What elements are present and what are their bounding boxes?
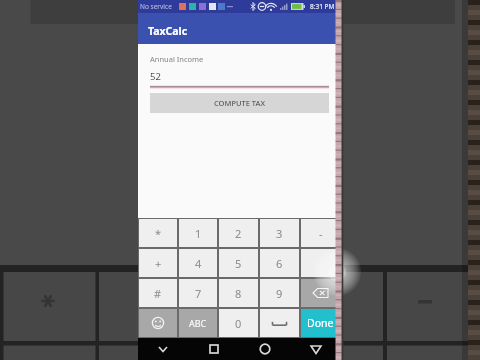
button[interactable]: ABC — [179, 309, 217, 337]
staticText: Done — [307, 316, 334, 330]
button[interactable]: * — [139, 219, 177, 247]
button[interactable]: 8 — [219, 279, 258, 307]
staticText: ABC — [189, 317, 207, 329]
staticText: 4 — [195, 256, 202, 271]
button[interactable]: Done — [301, 309, 340, 337]
staticText: 52 — [150, 70, 161, 83]
staticText: 2 — [235, 226, 242, 241]
staticText: - — [319, 226, 323, 241]
button[interactable]: 7 — [179, 279, 217, 307]
staticText: 7 — [195, 286, 202, 301]
staticText: TaxCalc — [148, 24, 188, 38]
staticText: 8 — [235, 286, 242, 301]
staticText: COMPUTE TAX — [214, 98, 266, 108]
button[interactable]: 5 — [219, 249, 258, 277]
button[interactable]: Emoji — [139, 309, 177, 337]
button[interactable]: COMPUTE TAX — [150, 93, 329, 113]
button[interactable]: 9 — [260, 279, 299, 307]
staticText: # — [154, 286, 162, 301]
staticText: 1 — [195, 226, 202, 241]
button[interactable]: Home — [239, 338, 290, 360]
staticText: + — [155, 256, 162, 271]
staticText: Annual Income — [150, 54, 204, 64]
staticText: 9 — [276, 286, 283, 301]
staticText: * — [155, 226, 162, 241]
button[interactable]: + — [139, 249, 177, 277]
staticText: 5 — [235, 256, 242, 271]
button[interactable]: - — [301, 219, 340, 247]
staticText: 3 — [276, 226, 283, 241]
button[interactable]: Space — [260, 309, 299, 337]
button[interactable]: 4 — [179, 249, 217, 277]
button[interactable] — [301, 249, 340, 277]
button[interactable]: 1 — [179, 219, 217, 247]
staticText: 8:31 PM — [310, 2, 335, 11]
staticText: No service — [140, 2, 172, 11]
button[interactable]: Recent apps — [188, 338, 239, 360]
button[interactable]: # — [139, 279, 177, 307]
button[interactable]: 2 — [219, 219, 258, 247]
staticText: 0 — [235, 316, 242, 331]
button[interactable]: 3 — [260, 219, 299, 247]
button[interactable]: 6 — [260, 249, 299, 277]
button[interactable]: Back — [290, 338, 341, 360]
staticText: 6 — [276, 256, 283, 271]
button[interactable]: 0 — [219, 309, 258, 337]
button[interactable]: Backspace — [301, 279, 340, 307]
button[interactable]: Hide keyboard — [138, 338, 188, 360]
